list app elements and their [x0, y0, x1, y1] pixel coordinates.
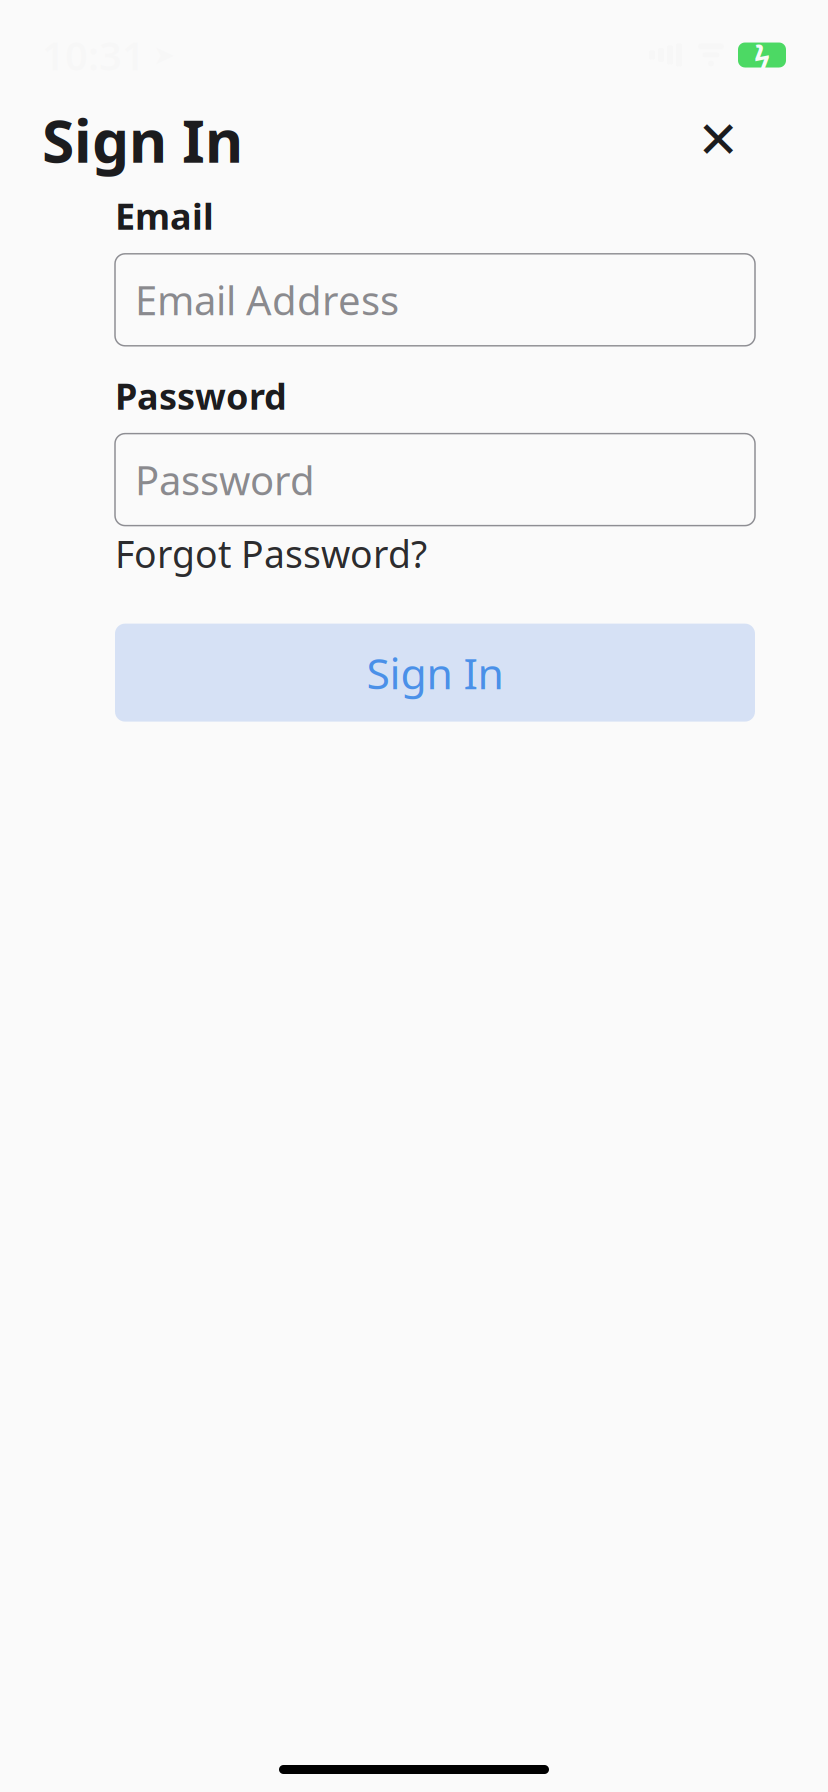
- staticText: Sign In: [42, 101, 243, 179]
- button[interactable]: Close: [686, 108, 750, 172]
- staticText: Forgot Password?: [115, 529, 427, 578]
- staticText: Email: [115, 192, 214, 240]
- staticText: Password: [135, 453, 315, 506]
- staticText: ϟ: [754, 35, 770, 74]
- staticText: Email Address: [135, 273, 399, 326]
- button[interactable]: Sign In: [115, 624, 755, 722]
- button[interactable]: Forgot Password?: [115, 532, 755, 576]
- button[interactable]: Email Address: [115, 254, 755, 346]
- staticText: Sign In: [366, 644, 503, 701]
- button[interactable]: Password: [115, 434, 755, 526]
- staticText: Password: [115, 372, 287, 420]
- staticText: ✕: [697, 111, 739, 169]
